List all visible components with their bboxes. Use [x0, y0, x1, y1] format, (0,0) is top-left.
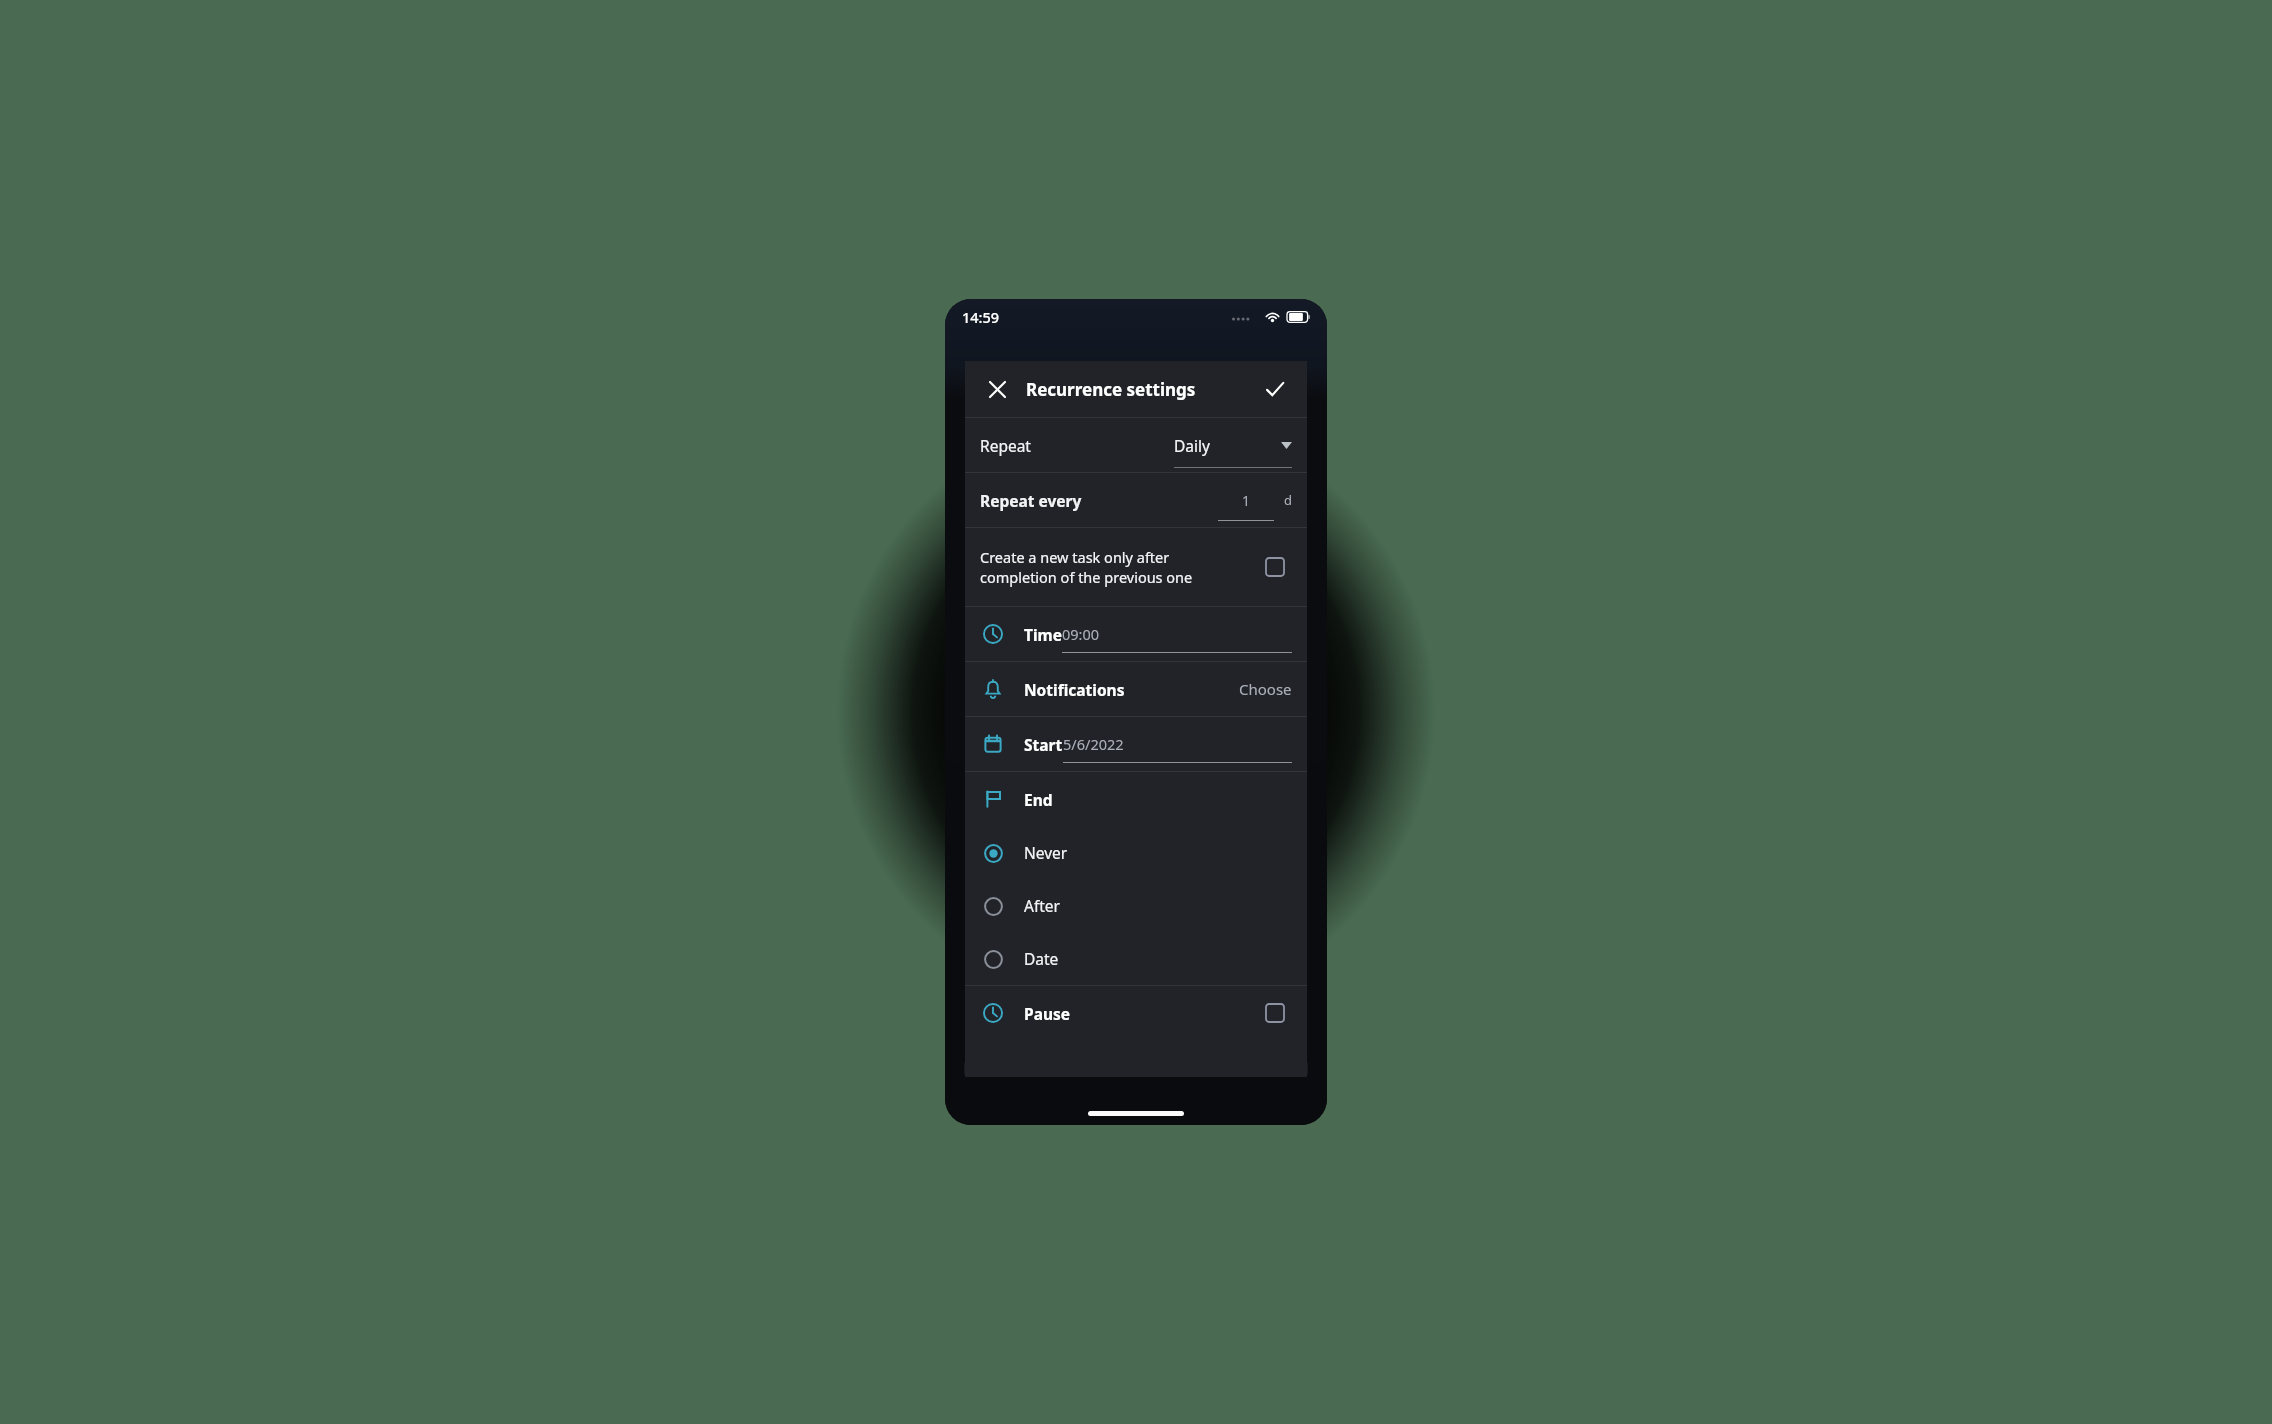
button[interactable]: Checkbox [1258, 550, 1292, 584]
staticText: 14:59 [962, 307, 1000, 327]
button[interactable]: Create a new task only after completion … [965, 528, 1307, 606]
staticText: Notifications [1024, 679, 1125, 700]
staticText: End [1024, 789, 1053, 810]
staticText: Create a new task only after completion … [980, 547, 1193, 587]
button[interactable]: Repeat [965, 418, 1307, 472]
staticText: Choose [1239, 679, 1292, 699]
button[interactable]: Pause [965, 986, 1307, 1040]
staticText: Start [1024, 734, 1063, 755]
staticText: 09:00 [1062, 624, 1100, 644]
button[interactable]: Time [965, 607, 1307, 661]
button[interactable]: Checkbox [1258, 996, 1292, 1030]
staticText: d [1284, 491, 1292, 509]
staticText: Pause [1024, 1003, 1071, 1024]
button[interactable]: Notifications [965, 662, 1307, 716]
staticText: Time [1024, 624, 1062, 645]
button[interactable]: Repeat every [965, 473, 1307, 527]
staticText: 5/6/2022 [1063, 734, 1124, 754]
button[interactable]: Start [965, 717, 1307, 771]
staticText: Recurrence settings [1026, 378, 1196, 401]
button[interactable]: Never [965, 826, 1307, 879]
button[interactable]: After [965, 879, 1307, 932]
staticText: Repeat [980, 435, 1031, 456]
button[interactable]: Close [978, 370, 1016, 408]
staticText: Date [1024, 948, 1059, 969]
button[interactable]: Save [1256, 370, 1294, 408]
staticText: Daily [1174, 435, 1210, 456]
staticText: After [1024, 895, 1060, 916]
staticText: Repeat every [980, 490, 1082, 511]
button[interactable]: Date [965, 932, 1307, 985]
staticText: 1 [1218, 491, 1274, 510]
button[interactable]: End [965, 772, 1307, 826]
staticText: Never [1024, 842, 1068, 863]
